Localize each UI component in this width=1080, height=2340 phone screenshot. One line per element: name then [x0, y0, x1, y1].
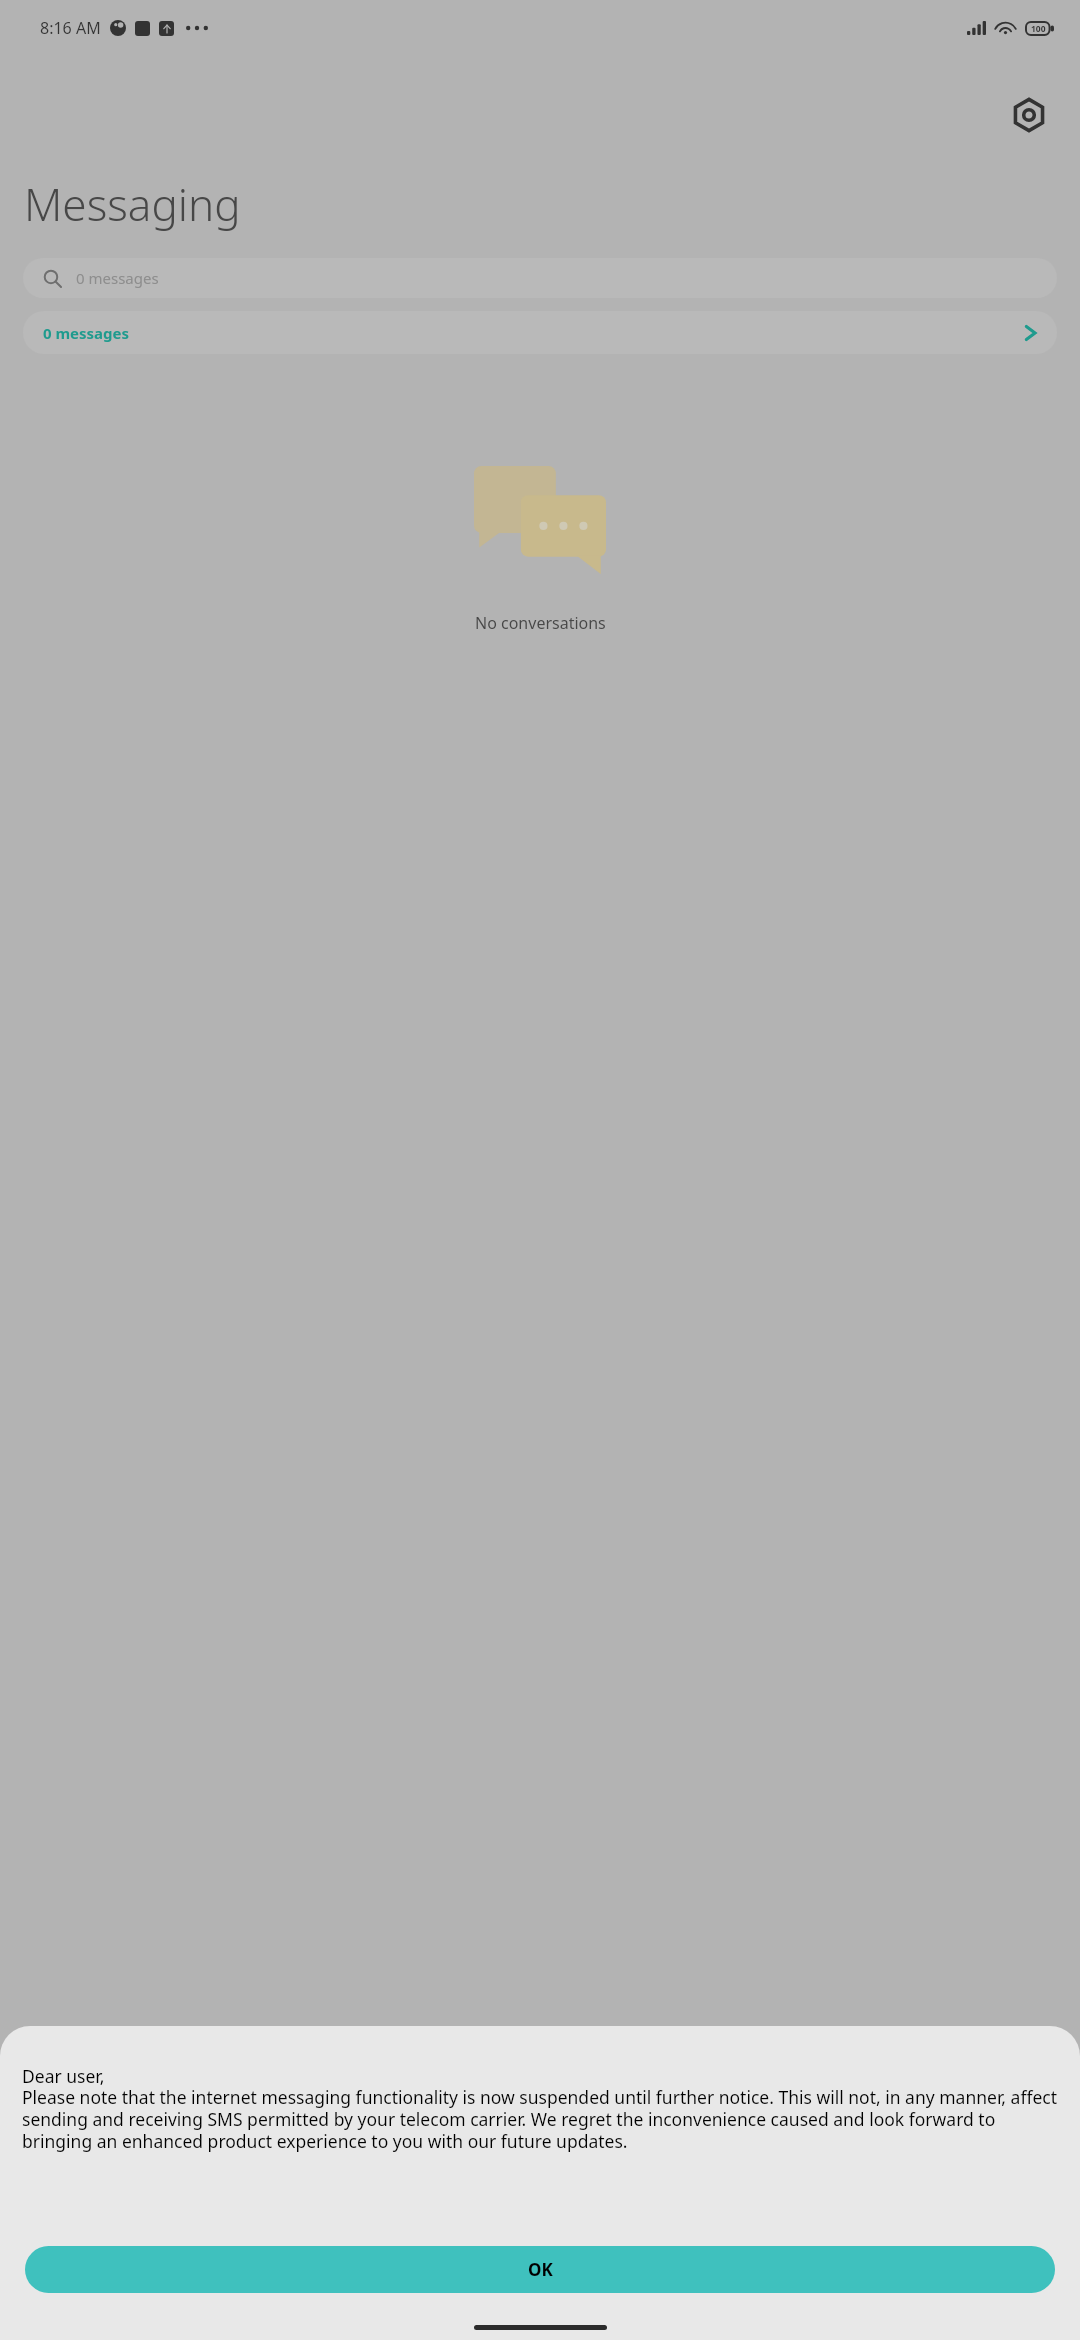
- staticText: 8:16 AM: [40, 17, 101, 39]
- button[interactable]: 0 messages: [23, 311, 1057, 354]
- button[interactable]: Settings: [1000, 86, 1058, 144]
- staticText: 0 messages: [43, 323, 130, 343]
- staticText: Messaging: [24, 174, 241, 234]
- staticText: OK: [528, 2258, 553, 2281]
- staticText: Dear user, Please note that the internet…: [22, 2064, 1058, 2153]
- staticText: No conversations: [475, 612, 606, 634]
- staticText: 0 messages: [76, 268, 159, 288]
- button[interactable]: OK: [25, 2246, 1055, 2293]
- staticText: 100: [1031, 23, 1046, 35]
- button[interactable]: 0 messages: [23, 258, 1057, 298]
